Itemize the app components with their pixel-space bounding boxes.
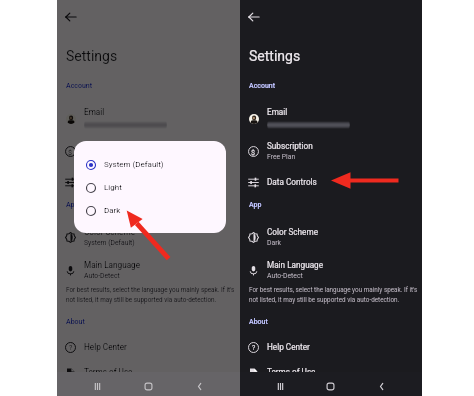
staticText: Color Scheme [84, 227, 135, 237]
staticText: System (Default) [104, 160, 164, 169]
button[interactable]: ? [240, 335, 422, 359]
button[interactable]: Color Scheme [57, 222, 240, 252]
button[interactable]: Light [74, 176, 226, 199]
staticText: Help Center [267, 342, 310, 352]
staticText: Subscription [267, 141, 313, 151]
button[interactable]: Email [240, 103, 422, 133]
staticText: Email [84, 107, 105, 117]
staticText: ? [69, 344, 73, 352]
button[interactable]: Recent apps [255, 377, 305, 396]
staticText: Email [267, 107, 288, 117]
staticText: Settings [249, 48, 301, 64]
staticText: Auto-Detect [84, 272, 120, 280]
button[interactable]: Main Language [57, 255, 240, 285]
staticText: Free Plan [84, 153, 113, 161]
staticText: Main Language [267, 260, 324, 270]
button[interactable]: Dark [74, 199, 226, 222]
staticText: Auto-Detect [267, 272, 303, 280]
button[interactable]: ? [57, 335, 240, 359]
button[interactable]: Color Scheme [240, 222, 422, 252]
staticText: Data Controls [84, 177, 134, 187]
staticText: Light [104, 183, 122, 192]
button[interactable]: Back [63, 9, 79, 25]
staticText: App [66, 201, 79, 209]
button[interactable]: Data Controls [57, 170, 240, 194]
staticText: Main Language [84, 260, 141, 270]
staticText: Account [249, 82, 276, 90]
button[interactable]: Terms of Use [240, 360, 422, 384]
button[interactable]: Data Controls [240, 170, 422, 194]
button[interactable]: Home [123, 377, 174, 396]
staticText: Data Controls [267, 177, 317, 187]
staticText: About [66, 318, 85, 326]
staticText: Account [66, 82, 93, 90]
staticText: About [249, 318, 268, 326]
button[interactable]: Home [305, 377, 356, 396]
button[interactable]: System (Default) [74, 153, 226, 176]
staticText: $ [68, 148, 73, 156]
button[interactable]: Email [57, 103, 240, 133]
staticText: $ [251, 148, 256, 156]
staticText: Dark [104, 206, 121, 215]
staticText: Settings [66, 48, 118, 64]
staticText: For best results, select the language yo… [66, 286, 238, 303]
staticText: App [249, 201, 262, 209]
button[interactable]: Recent apps [72, 377, 123, 396]
staticText: For best results, select the language yo… [249, 286, 421, 303]
staticText: ? [252, 344, 256, 352]
button[interactable]: Back [356, 377, 407, 396]
button[interactable]: Main Language [240, 255, 422, 285]
button[interactable]: $ [240, 136, 422, 166]
button[interactable]: Back [246, 9, 262, 25]
staticText: Terms of Use [84, 367, 133, 377]
staticText: Help Center [84, 342, 127, 352]
staticText: Color Scheme [267, 227, 318, 237]
staticText: Dark [267, 239, 281, 247]
button[interactable]: Terms of Use [57, 360, 240, 384]
staticText: Free Plan [267, 153, 296, 161]
staticText: Terms of Use [267, 367, 316, 377]
staticText: System (Default) [84, 239, 135, 247]
button[interactable]: $ [57, 136, 240, 166]
button[interactable]: Back [174, 377, 225, 396]
